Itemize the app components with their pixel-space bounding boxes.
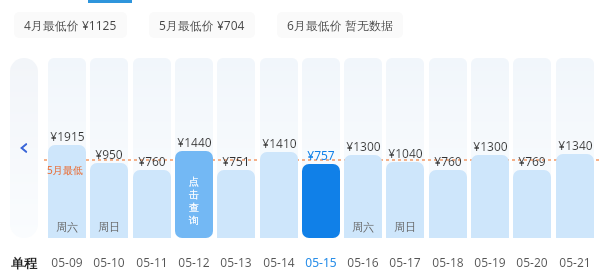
- button[interactable]: 周六: [48, 145, 86, 238]
- button[interactable]: Previous week: [10, 58, 38, 238]
- staticText: ¥1040: [388, 145, 423, 161]
- button[interactable]: [217, 170, 255, 238]
- staticText: ¥769: [518, 153, 546, 169]
- staticText: 周日: [394, 220, 416, 234]
- button[interactable]: 6月最低价 暂无数据: [277, 12, 403, 38]
- staticText: 05-16: [347, 254, 379, 270]
- button[interactable]: 4月最低价 ¥1125: [14, 12, 127, 38]
- staticText: 6月最低价 暂无数据: [287, 17, 393, 33]
- staticText: 05-13: [220, 254, 252, 270]
- staticText: 周六: [56, 220, 78, 234]
- button[interactable]: 05-09: [42, 254, 92, 270]
- staticText: 05-21: [559, 254, 591, 270]
- button[interactable]: 05-14: [254, 254, 304, 270]
- staticText: 05-15: [305, 254, 337, 270]
- staticText: ¥757: [307, 147, 335, 163]
- button[interactable]: 周日: [386, 162, 424, 238]
- button[interactable]: [513, 170, 551, 238]
- staticText: ¥1440: [177, 134, 212, 150]
- button[interactable]: [556, 154, 594, 238]
- button[interactable]: 周日: [90, 163, 128, 238]
- staticText: 05-14: [263, 254, 295, 270]
- button[interactable]: 05-20: [507, 254, 557, 270]
- staticText: ¥950: [95, 146, 123, 162]
- staticText: 05-09: [51, 254, 83, 270]
- staticText: ¥1300: [473, 138, 508, 154]
- staticText: ¥751: [222, 153, 250, 169]
- staticText: ¥1915: [50, 128, 85, 144]
- button[interactable]: 05-17: [380, 254, 430, 270]
- staticText: 05-19: [474, 254, 506, 270]
- staticText: 5月最低价 ¥704: [159, 17, 245, 33]
- staticText: 5月最低: [47, 163, 83, 177]
- staticText: ¥760: [138, 153, 166, 169]
- button[interactable]: 05-15: [296, 254, 346, 270]
- staticText: 击: [189, 188, 199, 201]
- button[interactable]: [302, 164, 340, 238]
- button[interactable]: 5月最低价 ¥704: [149, 12, 255, 38]
- staticText: 05-17: [389, 254, 421, 270]
- staticText: 05-20: [516, 254, 548, 270]
- button[interactable]: [260, 152, 298, 238]
- staticText: 4月最低价 ¥1125: [24, 17, 117, 33]
- button[interactable]: 周六: [344, 155, 382, 238]
- button[interactable]: 点: [175, 151, 213, 238]
- button[interactable]: [471, 155, 509, 238]
- staticText: ¥760: [434, 153, 462, 169]
- button[interactable]: 05-19: [465, 254, 515, 270]
- staticText: 05-12: [178, 254, 210, 270]
- button[interactable]: 05-10: [84, 254, 134, 270]
- staticText: 单程: [11, 255, 37, 271]
- staticText: ¥1340: [558, 137, 593, 153]
- button[interactable]: 05-16: [338, 254, 388, 270]
- staticText: 05-18: [432, 254, 464, 270]
- button[interactable]: [133, 170, 171, 238]
- staticText: 05-11: [136, 254, 168, 270]
- button[interactable]: 05-11: [127, 254, 177, 270]
- staticText: 点: [189, 175, 199, 188]
- staticText: 查: [189, 201, 199, 214]
- button[interactable]: 05-13: [211, 254, 261, 270]
- button[interactable]: 05-18: [423, 254, 473, 270]
- button[interactable]: [429, 170, 467, 238]
- staticText: 询: [189, 214, 199, 227]
- button[interactable]: 05-12: [169, 254, 219, 270]
- button[interactable]: 05-21: [550, 254, 600, 270]
- staticText: ¥1410: [262, 135, 297, 151]
- staticText: 周六: [352, 220, 374, 234]
- staticText: ¥1300: [346, 138, 381, 154]
- staticText: 周日: [98, 220, 120, 234]
- staticText: 05-10: [93, 254, 125, 270]
